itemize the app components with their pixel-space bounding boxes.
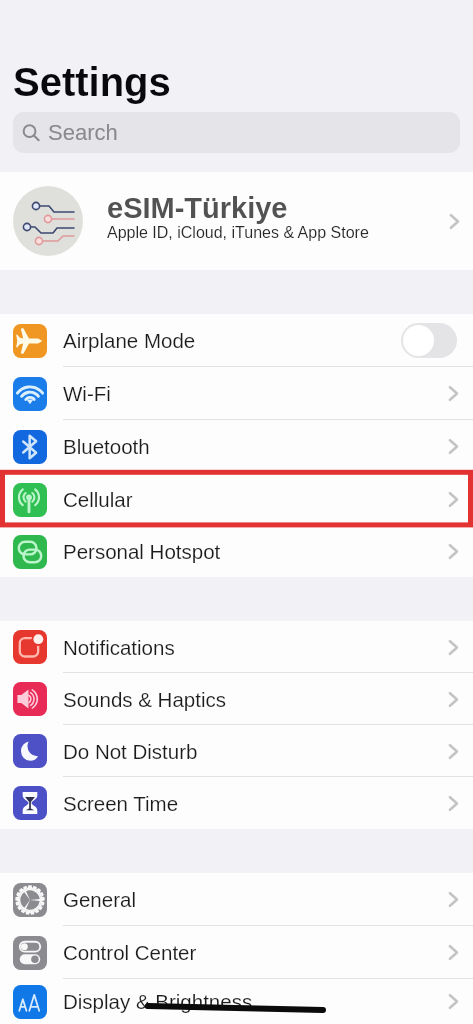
staticText: Control Center [63, 941, 197, 964]
other: Open [448, 944, 459, 961]
staticText: eSIM-Türkiye [107, 192, 288, 224]
staticText: Sounds & Haptics [63, 688, 226, 711]
other: Open [448, 438, 459, 455]
staticText: Settings [13, 60, 171, 105]
button[interactable]: General [0, 873, 473, 926]
other: Open [448, 543, 459, 560]
other: Open [448, 743, 459, 760]
other: Open [448, 385, 459, 402]
staticText: General [63, 888, 136, 911]
other: Open [448, 639, 459, 656]
staticText: Screen Time [63, 792, 179, 815]
button[interactable]: Bluetooth [0, 420, 473, 473]
button[interactable]: Sounds & Haptics [0, 673, 473, 725]
button[interactable]: Airplane Mode [0, 314, 473, 367]
button[interactable]: Control Center [0, 926, 473, 979]
button[interactable]: Cellular [0, 473, 473, 526]
staticText: Notifications [63, 636, 175, 659]
staticText: Do Not Disturb [63, 740, 198, 763]
button[interactable]: Screen Time [0, 777, 473, 829]
button[interactable]: Airplane Mode toggle [401, 323, 457, 358]
button[interactable]: Notifications [0, 621, 473, 673]
staticText: Wi-Fi [63, 382, 111, 405]
button[interactable]: Personal Hotspot [0, 526, 473, 577]
button[interactable]: eSIM-Türkiye [0, 172, 473, 270]
staticText: Display & Brightness [63, 990, 253, 1013]
other: Open [448, 491, 459, 508]
staticText: Airplane Mode [63, 329, 196, 352]
other: Open [449, 213, 460, 230]
button[interactable]: Wi-Fi [0, 367, 473, 420]
button[interactable]: Display & Brightness [0, 979, 473, 1024]
other: Open [448, 691, 459, 708]
button[interactable]: Search [13, 112, 460, 153]
other: Open [448, 993, 459, 1010]
staticText: Personal Hotspot [63, 540, 221, 563]
other: Open [448, 795, 459, 812]
button[interactable]: Do Not Disturb [0, 725, 473, 777]
staticText: Cellular [63, 488, 133, 511]
staticText: Bluetooth [63, 435, 150, 458]
staticText: Search [48, 120, 118, 145]
other: Open [448, 891, 459, 908]
staticText: Apple ID, iCloud, iTunes & App Store [107, 224, 369, 242]
